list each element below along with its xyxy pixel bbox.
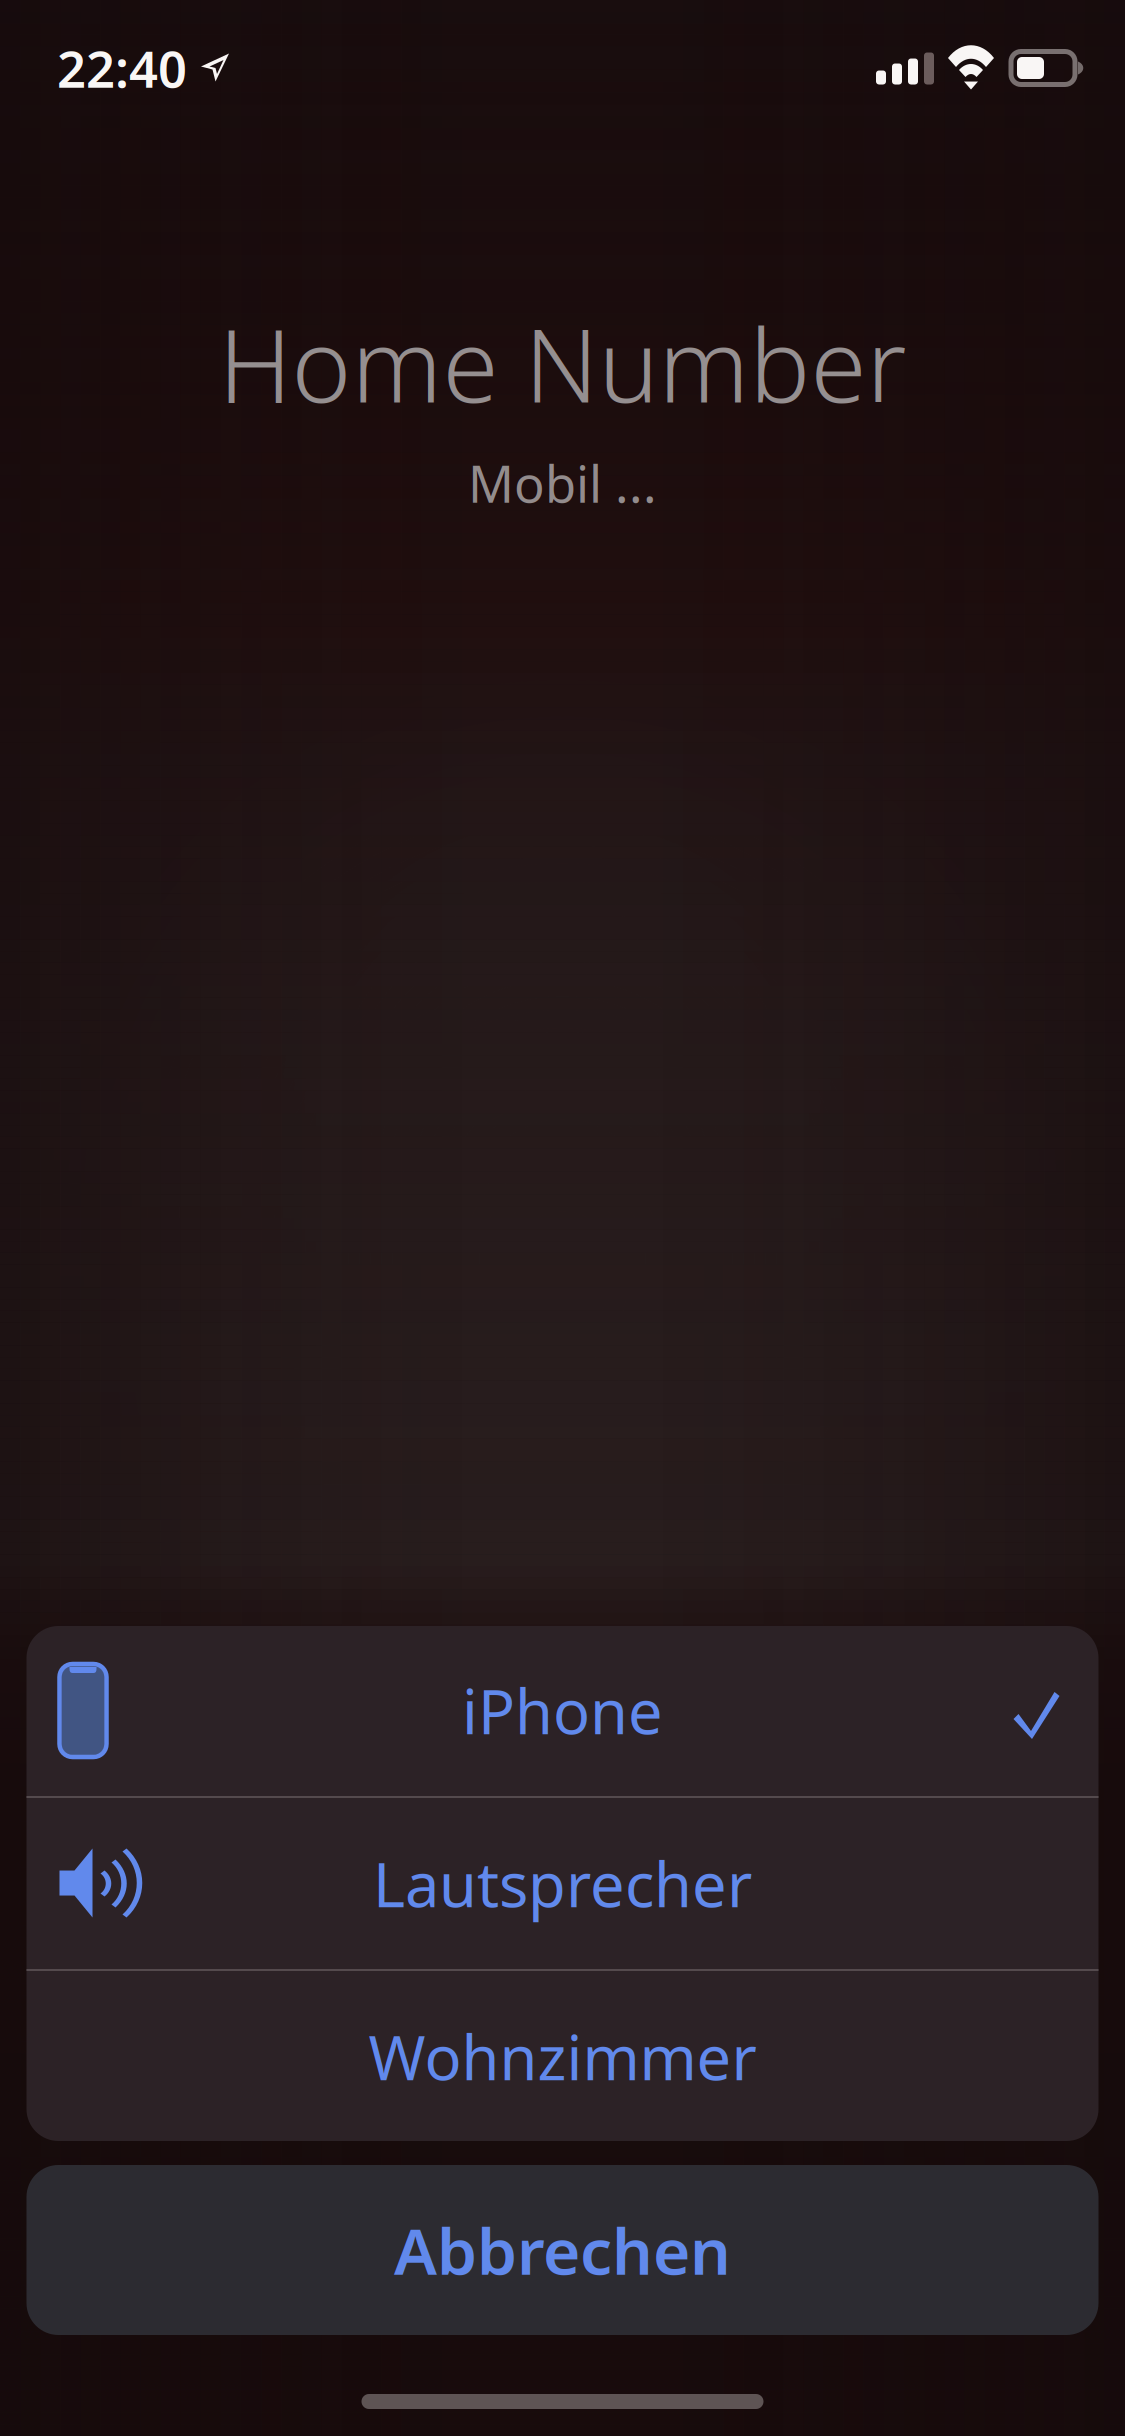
staticText: iPhone: [462, 1670, 663, 1751]
staticText: 22:40: [57, 34, 187, 102]
button[interactable]: iPhone: [26, 1625, 1098, 1796]
button[interactable]: Lautsprecher: [26, 1798, 1098, 1969]
staticText: Wohnzimmer: [368, 2016, 756, 2097]
staticText: Abbrechen: [394, 2207, 731, 2292]
staticText: Lautsprecher: [373, 1843, 752, 1924]
staticText: Home Number: [218, 296, 906, 431]
button[interactable]: Abbrechen: [26, 2165, 1098, 2335]
staticText: Mobil ...: [468, 450, 657, 517]
button[interactable]: Wohnzimmer: [26, 1971, 1098, 2142]
